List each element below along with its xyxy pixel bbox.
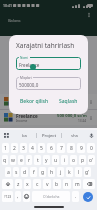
staticText: z (17, 181, 20, 188)
button[interactable]: y (43, 155, 50, 165)
button[interactable]: t (34, 155, 41, 165)
staticText: t (37, 157, 39, 164)
button[interactable]: f (30, 167, 37, 177)
staticText: 1 (4, 145, 7, 152)
button[interactable]: r (26, 155, 32, 165)
button[interactable]: Bekor qilish (17, 96, 52, 107)
button[interactable]: g (39, 167, 46, 177)
button[interactable]: Freelance (0, 110, 97, 125)
staticText: 0 (90, 145, 93, 152)
staticText: k (68, 169, 71, 176)
staticText: 2 (13, 145, 16, 152)
button[interactable]: 5 (38, 143, 45, 153)
staticText: Project (42, 133, 56, 139)
button[interactable]: q (2, 155, 8, 165)
button[interactable]: 3 (20, 143, 27, 153)
staticText: 3 (22, 145, 25, 152)
staticText: b (55, 181, 59, 188)
button[interactable]: Keyboard apps (0, 130, 13, 141)
staticText: e (20, 157, 23, 164)
staticText: , (17, 193, 19, 200)
button[interactable]: 1 (2, 143, 9, 153)
staticText: ?123 (4, 194, 12, 199)
button[interactable]: o' (88, 155, 95, 165)
staticText: f (33, 169, 35, 176)
button[interactable]: 6 (47, 143, 55, 153)
staticText: h (50, 169, 54, 176)
button[interactable]: n (63, 179, 71, 189)
staticText: Xarajat (16, 97, 33, 103)
button[interactable]: m (73, 179, 81, 189)
button[interactable]: a (5, 167, 11, 177)
button[interactable]: Project (37, 130, 61, 141)
button[interactable]: 7 (57, 143, 65, 153)
button[interactable]: d (21, 167, 28, 177)
staticText: . (75, 193, 77, 200)
button[interactable]: c (33, 179, 41, 189)
button[interactable]: More options (85, 11, 93, 19)
staticText: o (72, 157, 76, 164)
button[interactable]: i (61, 155, 68, 165)
button[interactable]: ba (13, 130, 36, 141)
staticText: i (64, 157, 66, 164)
button[interactable]: Row menu (89, 97, 93, 107)
staticText: 10:41 (3, 3, 12, 8)
button[interactable]: s (13, 167, 19, 177)
staticText: Income (16, 119, 28, 123)
button[interactable]: Emoji (23, 191, 30, 202)
button[interactable]: sha (62, 130, 86, 141)
button[interactable]: p (79, 155, 86, 165)
button[interactable]: h (48, 167, 55, 177)
staticText: sha (71, 133, 78, 139)
button[interactable]: k (66, 167, 73, 177)
button[interactable]: Backspace (83, 179, 95, 189)
button[interactable]: . (72, 191, 79, 202)
button[interactable]: z (15, 179, 22, 189)
button[interactable]: l (75, 167, 82, 177)
button[interactable]: Row menu (89, 113, 93, 123)
button[interactable]: 500000,0 (16, 77, 81, 90)
button[interactable]: g' (84, 167, 91, 177)
staticText: 5 (40, 145, 43, 152)
staticText: ba (22, 133, 27, 139)
button[interactable]: 8 (67, 143, 75, 153)
button[interactable]: o (70, 155, 77, 165)
button[interactable]: Saqlash (56, 96, 81, 107)
staticText: Freelance (19, 62, 40, 68)
button[interactable]: e (18, 155, 24, 165)
staticText: Bekor qilish (20, 98, 49, 105)
button[interactable]: x (24, 179, 31, 189)
button[interactable]: 4 (29, 143, 36, 153)
button[interactable]: b (53, 179, 61, 189)
staticText: l (78, 169, 80, 176)
button[interactable]: Space (32, 191, 70, 202)
button[interactable]: w (10, 155, 16, 165)
staticText: r (28, 157, 31, 164)
button[interactable]: j (57, 167, 64, 177)
staticText: q (3, 157, 7, 164)
button[interactable]: Enter (83, 192, 93, 202)
staticText: 13:24 (78, 119, 87, 123)
button[interactable]: Voice input (86, 130, 97, 141)
button[interactable]: 9 (77, 143, 85, 153)
staticText: Miqdori (20, 76, 32, 80)
button[interactable]: 0 (87, 143, 95, 153)
staticText: 4 (31, 145, 34, 152)
staticText: Balans (8, 18, 21, 23)
button[interactable]: Xarajat (0, 94, 97, 109)
button[interactable]: 2 (11, 143, 18, 153)
button[interactable]: v (43, 179, 51, 189)
button[interactable]: Freelance (16, 57, 81, 70)
staticText: d (23, 169, 27, 176)
button[interactable]: Shift (2, 179, 13, 189)
button[interactable]: , (15, 191, 21, 202)
staticText: a (7, 169, 10, 176)
button[interactable]: ?123 (2, 191, 13, 202)
staticText: u (54, 157, 58, 164)
staticText: c (36, 181, 39, 188)
button[interactable]: u (52, 155, 59, 165)
staticText: s (15, 169, 18, 176)
staticText: n (65, 181, 69, 188)
